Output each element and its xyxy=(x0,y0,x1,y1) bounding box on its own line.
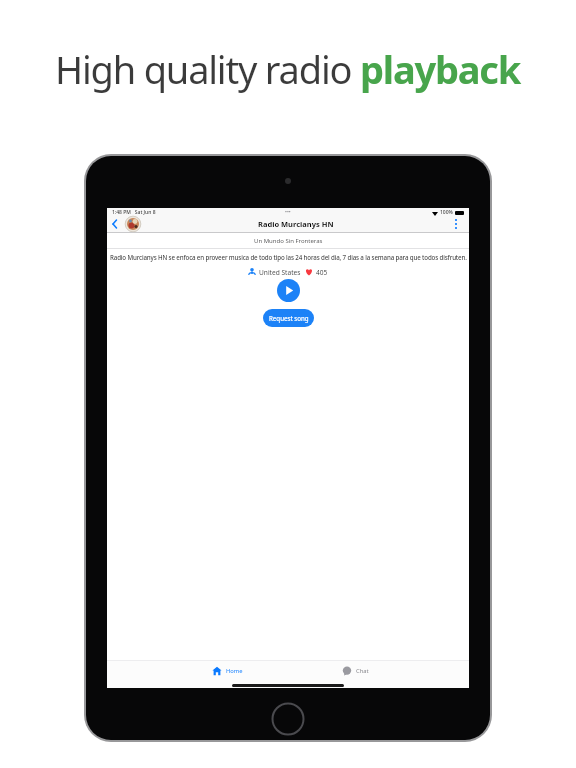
staticText: 405 xyxy=(316,268,328,277)
button[interactable]: Request song xyxy=(263,309,314,327)
button[interactable] xyxy=(109,217,121,231)
staticText: ••• xyxy=(285,209,291,216)
staticText: Chat xyxy=(356,667,369,675)
staticText: United States xyxy=(259,268,301,277)
staticText: 1:48 PM Sat Jun 8 xyxy=(112,209,156,216)
button[interactable] xyxy=(451,217,461,231)
staticText: Un Mundo Sin Fronteras xyxy=(254,237,323,245)
button[interactable]: Home xyxy=(212,666,243,676)
staticText: Home xyxy=(226,667,243,675)
button[interactable] xyxy=(277,279,300,302)
button[interactable]: Chat xyxy=(342,666,369,676)
staticText: High quality radio playback xyxy=(55,43,521,95)
staticText: Request song xyxy=(269,314,309,322)
staticText: Radio Murcianys HN se enfoca en proveer … xyxy=(110,253,467,261)
staticText: Radio Murcianys HN xyxy=(258,219,334,229)
staticText: 100% xyxy=(440,209,453,216)
